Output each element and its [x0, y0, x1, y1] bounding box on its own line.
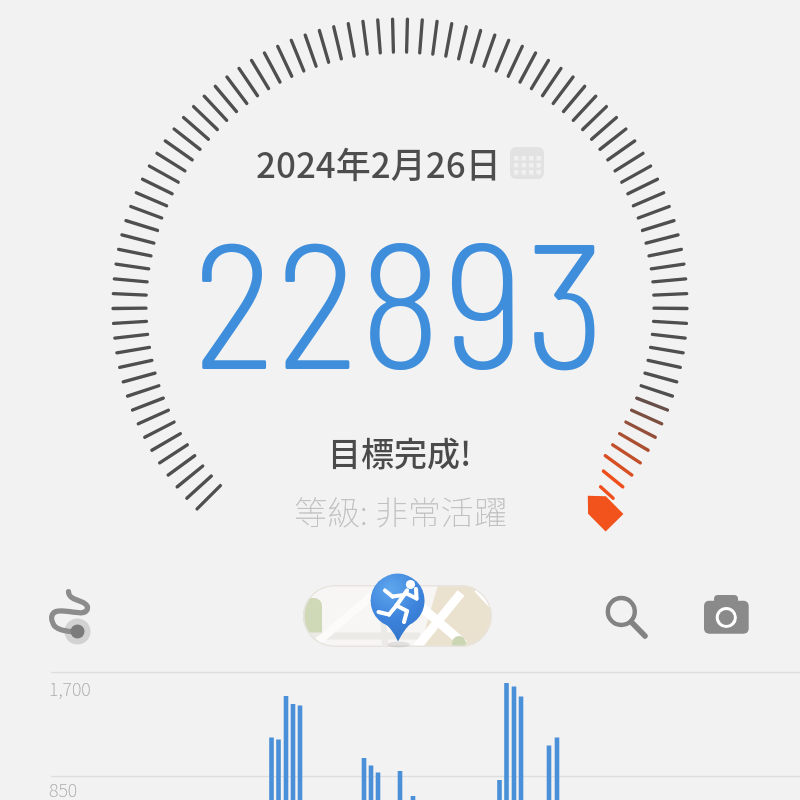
- button[interactable]: 2024年2月26日: [256, 137, 544, 188]
- staticText: 2024年2月26日: [256, 137, 501, 188]
- button[interactable]: 1,700: [0, 660, 800, 800]
- button[interactable]: [303, 585, 492, 647]
- staticText: 目標完成!: [328, 428, 472, 476]
- button[interactable]: [698, 590, 754, 640]
- button[interactable]: [598, 588, 652, 642]
- staticText: 850: [49, 776, 78, 800]
- staticText: 22893: [193, 193, 608, 404]
- staticText: 1,700: [49, 675, 91, 701]
- button[interactable]: [38, 578, 96, 644]
- staticText: 等級: 非常活躍: [294, 487, 507, 535]
